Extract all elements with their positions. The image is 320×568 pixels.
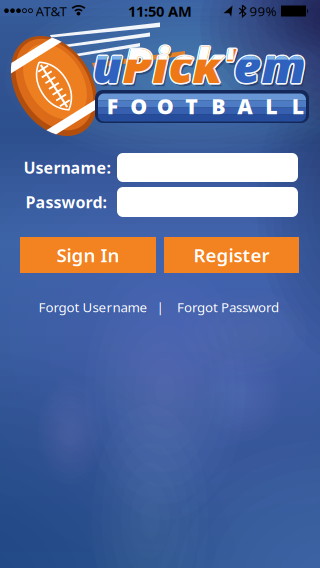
staticText: T [185, 92, 198, 120]
staticText: em [233, 31, 305, 95]
staticText: Pick' [124, 34, 235, 97]
button[interactable]: Username [117, 153, 298, 182]
button[interactable]: Password [117, 187, 298, 217]
staticText: u [91, 31, 121, 95]
staticText: Forgot Password [177, 298, 279, 316]
staticText: AT&T [35, 2, 66, 20]
staticText: u [95, 36, 125, 99]
staticText: Pick' [122, 31, 233, 95]
staticText: u [91, 33, 121, 96]
button[interactable]: Forgot Username [38, 298, 147, 316]
staticText: Forgot Username [38, 298, 147, 316]
staticText: Pick' [124, 33, 235, 96]
staticText: u [92, 33, 122, 96]
staticText: Pick' [122, 33, 233, 96]
staticText: u [91, 34, 121, 97]
staticText: O [157, 92, 174, 120]
staticText: O [130, 92, 147, 120]
staticText: Pick' [122, 33, 233, 96]
staticText: em [235, 34, 307, 97]
staticText: u [94, 31, 124, 95]
staticText: L [292, 92, 304, 120]
staticText: em [232, 34, 304, 97]
staticText: Pick' [121, 31, 232, 95]
button[interactable]: Sign In [20, 237, 156, 273]
staticText: A [237, 92, 252, 120]
staticText: u [92, 31, 122, 95]
staticText: u [94, 33, 124, 96]
staticText: | [156, 298, 163, 316]
staticText: u [94, 34, 124, 97]
staticText: em [233, 33, 305, 96]
staticText: em [232, 33, 304, 96]
staticText: em [235, 31, 307, 95]
button[interactable]: Forgot Password [177, 298, 279, 316]
staticText: 99% [249, 2, 276, 20]
staticText: 11:50 AM [128, 1, 192, 21]
staticText: Pick' [121, 33, 232, 96]
staticText: Pick' [125, 36, 236, 99]
staticText: em [232, 31, 304, 95]
staticText: Sign In [56, 243, 119, 267]
staticText: Username: [23, 157, 110, 178]
staticText: em [233, 33, 305, 96]
staticText: Pick' [121, 34, 232, 97]
staticText: u [92, 34, 122, 98]
staticText: em [233, 34, 305, 98]
staticText: F [107, 92, 118, 120]
staticText: L [265, 92, 277, 120]
staticText: Pick' [124, 31, 235, 95]
staticText: Register [193, 243, 269, 267]
staticText: em [235, 33, 307, 96]
staticText: Pick' [122, 34, 233, 98]
staticText: B [211, 92, 225, 120]
staticText: Password: [25, 191, 106, 213]
staticText: em [236, 36, 308, 99]
staticText: u [92, 33, 122, 96]
button[interactable]: Register [164, 237, 299, 273]
